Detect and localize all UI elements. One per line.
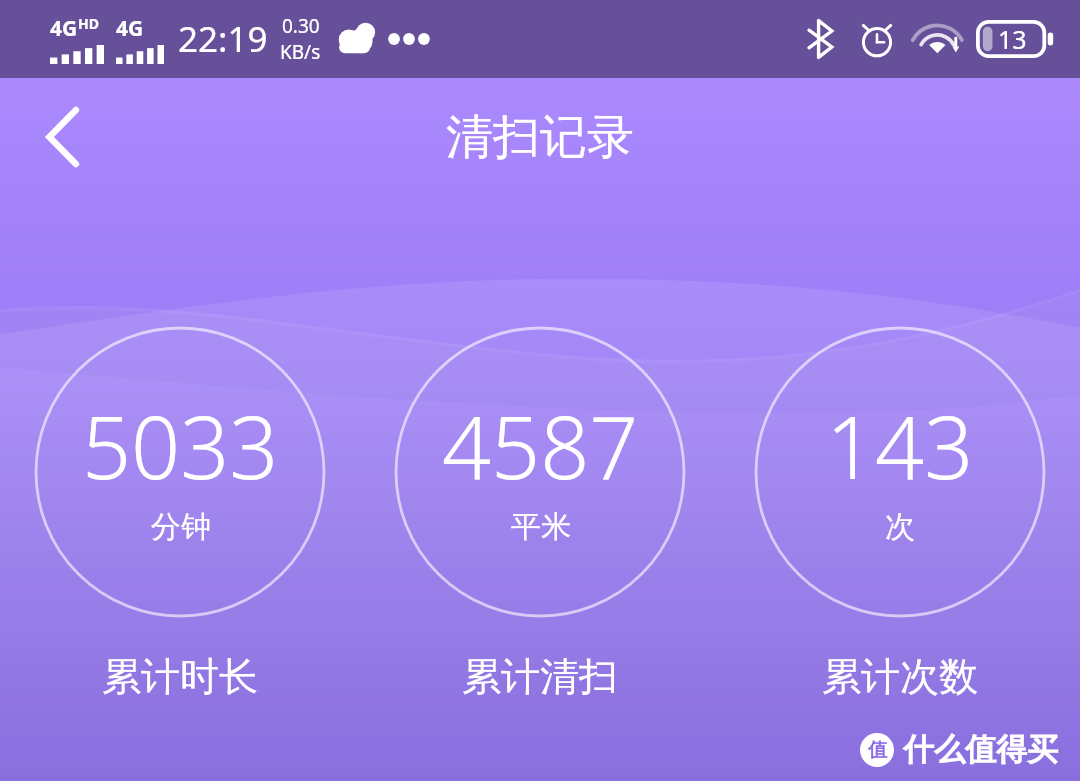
staticText: 5033 — [82, 387, 279, 504]
staticText: 值 — [868, 738, 887, 762]
staticText: 143 — [826, 387, 974, 504]
button[interactable]: 值 — [860, 730, 1058, 769]
staticText: 清扫记录 — [446, 108, 634, 167]
button[interactable]: 143 — [720, 326, 1080, 701]
staticText: 13 — [998, 22, 1027, 56]
staticText: 4587 — [442, 387, 639, 504]
button[interactable]: 4587 — [360, 326, 720, 701]
staticText: 4G — [116, 14, 144, 43]
staticText: 什么值得买 — [903, 730, 1058, 769]
button[interactable]: Back — [24, 98, 102, 176]
button[interactable]: 5033 — [0, 326, 360, 701]
staticText: 4G — [50, 14, 78, 43]
staticText: 累计时长 — [102, 652, 258, 701]
staticText: 累计清扫 — [462, 652, 618, 701]
staticText: 平米 — [511, 508, 571, 546]
staticText: 22:19 — [178, 15, 268, 63]
staticText: 0.30 — [282, 13, 320, 39]
staticText: HD — [78, 14, 99, 33]
staticText: 分钟 — [151, 508, 211, 546]
staticText: 累计次数 — [822, 652, 978, 701]
staticText: KB/s — [280, 39, 321, 65]
staticText: 次 — [885, 508, 915, 546]
